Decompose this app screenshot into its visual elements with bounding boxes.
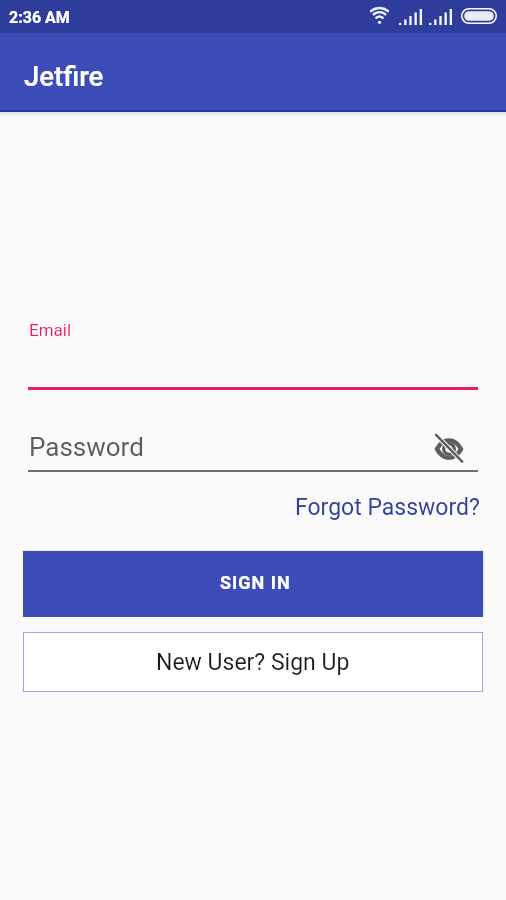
- staticText: Jetfire: [24, 60, 104, 92]
- staticText: SIGN IN: [220, 572, 291, 593]
- button[interactable]: Forgot Password?: [286, 484, 489, 531]
- staticText: New User? Sign Up: [156, 649, 350, 676]
- staticText: 2:36 AM: [9, 8, 70, 27]
- button[interactable]: [28, 312, 478, 390]
- button[interactable]: SIGN IN: [23, 551, 483, 617]
- staticText: Forgot Password?: [295, 494, 480, 521]
- staticText: Password: [29, 432, 144, 462]
- button[interactable]: New User? Sign Up: [23, 632, 483, 692]
- button[interactable]: [28, 428, 478, 472]
- button[interactable]: Show password: [431, 431, 467, 467]
- staticText: Email: [29, 320, 72, 340]
